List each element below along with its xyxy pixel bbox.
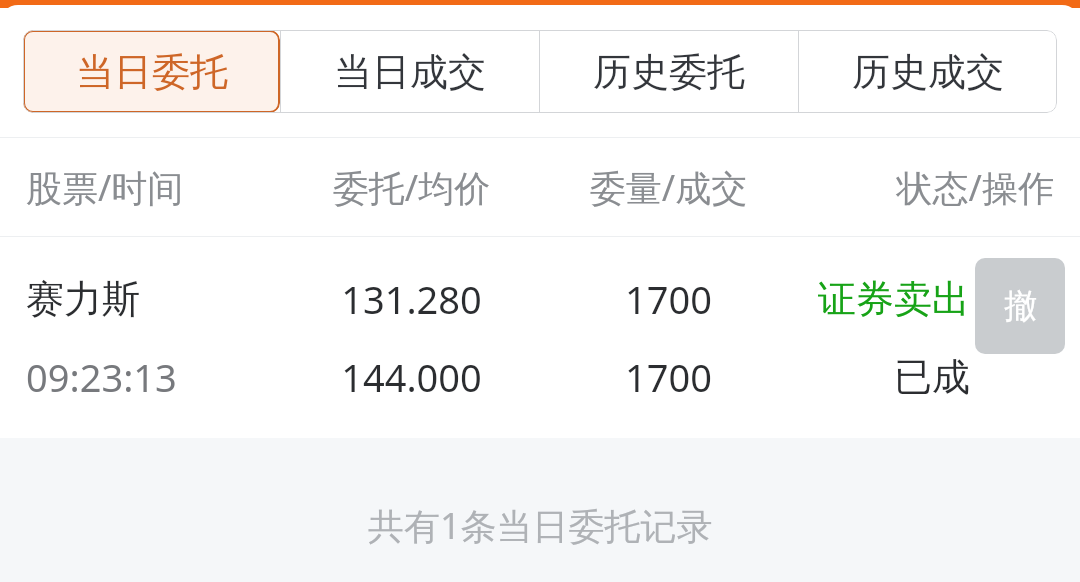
- staticText: 状态/操作: [797, 163, 1054, 212]
- staticText: 撤: [1004, 285, 1037, 327]
- staticText: 144.000: [283, 351, 540, 403]
- staticText: 131.280: [283, 273, 540, 325]
- button[interactable]: 撤单: [975, 258, 1065, 354]
- staticText: 委量/成交: [540, 163, 797, 212]
- staticText: 已成: [797, 353, 970, 401]
- button[interactable]: 当日成交: [281, 30, 539, 113]
- staticText: 证券卖出: [797, 275, 970, 323]
- staticText: 股票/时间: [26, 163, 283, 212]
- staticText: 09:23:13: [26, 351, 283, 403]
- staticText: 委托/均价: [283, 163, 540, 212]
- staticText: 历史成交: [852, 48, 1004, 96]
- staticText: 赛力斯: [26, 275, 283, 323]
- staticText: 1700: [540, 351, 797, 403]
- staticText: 1700: [540, 273, 797, 325]
- button[interactable]: 当日委托: [23, 30, 280, 113]
- staticText: 共有1条当日委托记录: [368, 501, 713, 550]
- button[interactable]: 赛力斯: [0, 237, 1080, 438]
- staticText: 当日委托: [76, 48, 228, 96]
- staticText: 当日成交: [334, 48, 486, 96]
- button[interactable]: 历史成交: [799, 30, 1057, 113]
- staticText: 历史委托: [593, 48, 745, 96]
- button[interactable]: 历史委托: [540, 30, 798, 113]
